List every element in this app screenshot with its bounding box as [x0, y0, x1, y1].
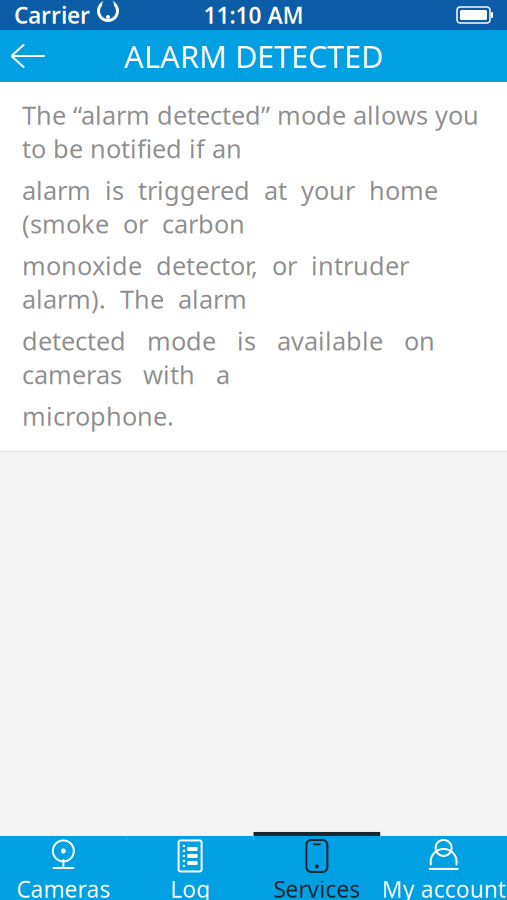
- button[interactable]: My account: [380, 840, 507, 900]
- staticText: Services: [273, 874, 360, 900]
- staticText: The “alarm detected” mode allows you to …: [22, 98, 479, 165]
- button[interactable]: Cameras: [0, 840, 127, 900]
- staticText: 11:10 AM: [203, 0, 303, 30]
- staticText: microphone.: [22, 399, 174, 433]
- staticText: ALARM DETECTED: [124, 36, 383, 76]
- staticText: monoxide detector, or intruder alarm). T…: [22, 249, 416, 316]
- staticText: Carrier: [14, 0, 90, 30]
- staticText: Log: [170, 874, 210, 900]
- button[interactable]: Services: [253, 840, 380, 900]
- staticText: detected mode is available on cameras wi…: [22, 324, 449, 391]
- button[interactable]: Log: [127, 840, 254, 900]
- staticText: Cameras: [16, 874, 110, 900]
- staticText: alarm is triggered at your home (smoke o…: [22, 173, 445, 241]
- button[interactable]: Back: [0, 30, 56, 82]
- staticText: My account: [382, 874, 506, 900]
